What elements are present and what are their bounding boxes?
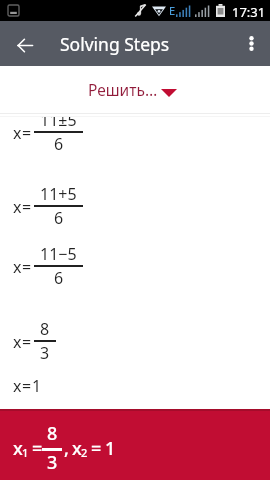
staticText: x [72,436,82,461]
button[interactable]: Решить… [80,70,185,109]
staticText: x [13,436,23,461]
staticText: 1 [105,436,116,461]
staticText: 8 [47,421,58,446]
staticText: 3 [47,450,58,475]
staticText: 1 [22,445,29,460]
staticText: 6 [54,133,64,155]
staticText: Решить… [88,79,158,100]
staticText: = [22,375,32,397]
staticText: = [91,436,102,461]
button[interactable]: Back [3,24,46,67]
staticText: x [13,122,22,144]
staticText: x [13,331,22,353]
staticText: = [22,256,32,278]
staticText: = [22,196,32,218]
staticText: 11±5 [40,117,77,131]
staticText: E [169,3,176,18]
staticText: 6 [54,207,64,229]
staticText: x [13,256,22,278]
staticText: 2 [81,445,88,460]
staticText: = [32,436,43,461]
staticText: 1 [32,375,42,397]
staticText: 3 [40,342,50,364]
staticText: , [64,436,69,461]
staticText: 8 [40,318,50,340]
staticText: = [22,122,32,144]
staticText: 11−5 [40,243,77,265]
staticText: Solving Steps [60,32,170,56]
staticText: 17:31 [232,3,266,21]
staticText: x [13,196,22,218]
staticText: = [22,331,32,353]
button[interactable]: More options [230,22,270,65]
staticText: 6 [54,267,64,289]
staticText: 11+5 [40,183,77,205]
staticText: x [13,375,22,397]
